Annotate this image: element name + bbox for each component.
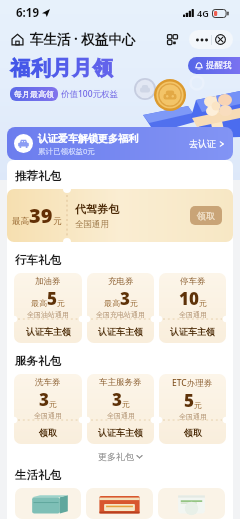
staticText: 认证车主领 — [98, 427, 143, 438]
staticText: 元 — [130, 298, 138, 308]
button[interactable]: 认证车主领 — [159, 319, 226, 343]
staticText: 元 — [49, 399, 57, 409]
staticText: 元 — [57, 298, 65, 308]
staticText: 洗车券 — [35, 377, 61, 388]
button[interactable]: 领取 — [14, 420, 82, 444]
staticText: 元 — [199, 298, 207, 308]
staticText: 生活礼包 — [15, 468, 61, 482]
staticText: 行车礼包 — [15, 253, 61, 267]
button[interactable] — [86, 488, 153, 519]
button[interactable]: 认证车主领 — [14, 319, 82, 343]
staticText: 6:19 — [16, 5, 39, 21]
staticText: 3 — [120, 287, 130, 310]
staticText: 全国油站通用 — [27, 310, 69, 319]
staticText: 累计已领权益0元 — [38, 146, 95, 156]
button[interactable]: More — [189, 30, 233, 49]
button[interactable]: 加油券 — [14, 273, 82, 343]
staticText: 加油券 — [35, 276, 61, 287]
button[interactable]: Scan code — [167, 34, 178, 45]
staticText: 充电券 — [108, 276, 134, 287]
button[interactable]: 车主服务券 — [87, 374, 154, 444]
staticText: 全国通用 — [179, 310, 207, 319]
button[interactable]: 洗车券 — [14, 374, 82, 444]
button[interactable]: 认证爱车解锁更多福利 — [7, 127, 233, 160]
staticText: 福利月月领 — [10, 56, 113, 81]
staticText: 全国充电站通用 — [96, 310, 145, 319]
staticText: 车主服务券 — [99, 377, 142, 388]
staticText: 推荐礼包 — [15, 169, 61, 183]
staticText: 3 — [112, 388, 122, 411]
staticText: 领取 — [184, 427, 202, 438]
staticText: 停车券 — [180, 276, 206, 287]
button[interactable]: 更多礼包 — [7, 444, 233, 468]
staticText: 3 — [39, 388, 49, 411]
staticText: 认证车主领 — [170, 326, 215, 337]
staticText: 服务礼包 — [15, 354, 61, 368]
staticText: 39 — [29, 202, 53, 229]
button[interactable]: 认证车主领 — [87, 420, 154, 444]
staticText: 全国通用 — [75, 219, 109, 230]
button[interactable]: 停车券 — [159, 273, 226, 343]
other: Close — [215, 34, 226, 45]
other: More — [196, 38, 208, 42]
staticText: 去认证 — [189, 138, 216, 149]
staticText: 提醒我 — [206, 60, 232, 71]
staticText: 领取 — [197, 210, 215, 221]
staticText: 元 — [122, 399, 130, 409]
staticText: 元 — [194, 400, 202, 410]
staticText: 代驾券包 — [75, 202, 119, 216]
staticText: 全国通用 — [179, 412, 207, 421]
staticText: 最高 — [31, 298, 47, 308]
staticText: 最高 — [12, 216, 29, 227]
button[interactable]: 充电券 — [87, 273, 154, 343]
staticText: 5 — [47, 287, 57, 310]
other: Home — [11, 33, 24, 46]
staticText: 认证爱车解锁更多福利 — [38, 132, 138, 145]
staticText: 10 — [179, 287, 199, 310]
staticText: 全国通用 — [34, 411, 62, 420]
button[interactable]: 提醒我 — [188, 57, 240, 74]
staticText: 元 — [53, 216, 62, 227]
button[interactable]: 领取 — [190, 206, 222, 225]
staticText: ETC办理券 — [172, 377, 213, 389]
button[interactable]: 领取 — [159, 420, 226, 444]
staticText: 领取 — [39, 427, 57, 438]
staticText: 车生活 · 权益中心 — [30, 30, 136, 48]
staticText: 4G — [197, 7, 209, 19]
staticText: 认证车主领 — [98, 326, 143, 337]
button[interactable]: 最高 — [7, 189, 233, 242]
staticText: 每月最高领 — [14, 89, 54, 99]
staticText: 5 — [184, 389, 194, 412]
button[interactable]: ETC办理券 — [159, 374, 226, 444]
staticText: 认证车主领 — [26, 326, 71, 337]
staticText: 价值100元权益 — [61, 88, 119, 100]
button[interactable]: 认证车主领 — [87, 319, 154, 343]
button[interactable] — [158, 488, 225, 519]
staticText: 更多礼包 — [98, 451, 134, 462]
button[interactable] — [15, 488, 81, 519]
staticText: 全国通用 — [107, 411, 135, 420]
staticText: 最高 — [104, 298, 120, 308]
